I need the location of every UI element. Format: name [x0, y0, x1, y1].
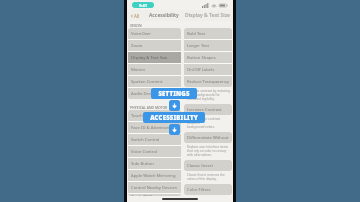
button[interactable]: ACCESSIBILITY [143, 112, 205, 123]
button[interactable]: Switch Control [128, 134, 181, 145]
staticText: Apple Watch Mirroring [131, 173, 176, 179]
staticText: Apple TV Remote [131, 194, 165, 196]
staticText: Accessibility [149, 12, 179, 19]
button[interactable]: Bold Text [184, 28, 232, 39]
button[interactable]: Next step [169, 124, 180, 135]
staticText: Differentiate Without Color [187, 135, 229, 141]
staticText: Replace user interface items that rely o… [187, 145, 230, 157]
button[interactable]: VoiceOver [128, 28, 181, 39]
staticText: Display & Text Size [131, 55, 168, 61]
button[interactable]: Side Button [128, 158, 181, 169]
staticText: Audio Descriptions [131, 91, 169, 97]
staticText: Increase contrast by reducing some backg… [187, 89, 230, 101]
staticText: ACCESSIBILITY [150, 114, 198, 122]
staticText: Bold Text [187, 31, 206, 37]
staticText: PHYSICAL AND MOTOR [130, 105, 168, 110]
button[interactable]: On/Off Labels [184, 64, 232, 75]
staticText: 9:41 [139, 3, 147, 8]
button[interactable]: Differentiate Without Color [184, 132, 232, 143]
staticText: Color Filters [187, 187, 211, 193]
staticText: Display & Text Size [185, 12, 231, 19]
button[interactable]: Apple TV Remote [128, 194, 181, 196]
staticText: Motion [131, 67, 146, 73]
button[interactable]: Spoken Content [128, 76, 181, 87]
staticText: On/Off Labels [187, 67, 215, 73]
button[interactable]: Apple Watch Mirroring [128, 170, 181, 181]
button[interactable]: All [127, 10, 182, 21]
button[interactable]: Color Filters [184, 184, 232, 195]
button[interactable]: Motion [128, 64, 181, 75]
staticText: Voice Control [131, 149, 158, 155]
staticText: VoiceOver [131, 31, 151, 37]
staticText: Switch Control [131, 137, 160, 143]
staticText: All [134, 13, 140, 19]
button[interactable]: Face ID & Attention [128, 122, 181, 133]
staticText: Increase Contrast [187, 107, 222, 113]
staticText: Spoken Content [131, 79, 163, 85]
button[interactable]: Button Shapes [184, 52, 232, 63]
staticText: Classic Invert reverses the colors of th… [187, 173, 230, 181]
button[interactable]: Voice Control [128, 146, 181, 157]
button[interactable]: Classic Invert [184, 160, 232, 171]
button[interactable]: Control Nearby Devices [128, 182, 181, 193]
button[interactable]: Display & Text Size [128, 52, 181, 63]
button[interactable]: Increase Contrast [184, 104, 232, 115]
staticText: Side Button [131, 161, 154, 167]
button[interactable]: Zoom [128, 40, 181, 51]
staticText: Zoom [131, 43, 143, 49]
button[interactable]: Audio Descriptions [128, 88, 181, 99]
staticText: SETTINGS [158, 90, 190, 98]
staticText: Button Shapes [187, 55, 216, 61]
staticText: Touch [131, 113, 143, 119]
staticText: Face ID & Attention [131, 125, 170, 131]
button[interactable]: Touch [128, 110, 181, 121]
staticText: Classic Invert [187, 163, 214, 169]
button[interactable]: Next step [169, 100, 180, 111]
button[interactable]: Larger Text [184, 40, 232, 51]
button[interactable]: SETTINGS [151, 88, 197, 99]
staticText: Increase color contrast between backgrou… [187, 117, 230, 129]
staticText: Control Nearby Devices [131, 185, 177, 191]
staticText: VISION [130, 23, 142, 28]
staticText: Reduce Transparency [187, 79, 229, 85]
button[interactable]: Reduce Transparency [184, 76, 232, 87]
staticText: Larger Text [187, 43, 210, 49]
